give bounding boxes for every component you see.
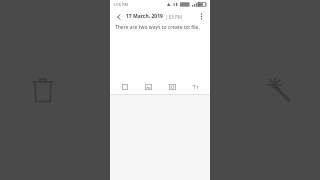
staticText: 1:06 PM [113,2,129,7]
staticText: There are two ways to create txt file. [115,24,200,31]
staticText: | 03 PM [165,14,182,20]
staticText: 17 March, 2019 [126,13,163,20]
button[interactable]: Delete [26,73,60,107]
button[interactable]: Take photo [166,81,178,93]
button[interactable]: Insert image [142,81,154,93]
button[interactable]: More options [196,11,207,22]
button[interactable]: Checklist [119,81,131,93]
button[interactable]: Text formatting [189,81,201,93]
button[interactable]: Back [113,11,124,22]
button[interactable]: Effects [262,73,296,107]
